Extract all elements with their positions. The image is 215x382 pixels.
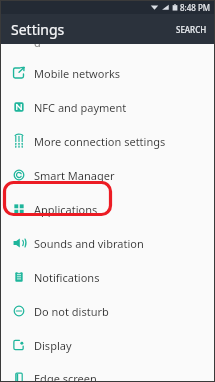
button[interactable]: Smart Manager: [0, 158, 215, 192]
staticText: Notifications: [34, 270, 100, 285]
button[interactable]: More connection settings: [0, 124, 215, 158]
staticText: Applications: [34, 202, 98, 217]
staticText: Do not disturb: [34, 304, 109, 319]
staticText: Smart Manager: [34, 168, 115, 183]
button[interactable]: Notifications: [0, 260, 215, 294]
button[interactable]: Display: [0, 328, 215, 362]
button[interactable]: Mobile networks: [0, 56, 215, 90]
button[interactable]: Applications: [0, 192, 215, 226]
staticText: SEARCH: [176, 24, 207, 35]
button[interactable]: NFC and payment: [0, 90, 215, 124]
button[interactable]: SEARCH: [168, 18, 215, 41]
staticText: Settings: [11, 20, 65, 39]
staticText: Display: [34, 338, 72, 353]
button[interactable]: Do not disturb: [0, 294, 215, 328]
button[interactable]: Sounds and vibration: [0, 226, 215, 260]
staticText: 8:48 PM: [180, 2, 211, 13]
button[interactable]: Edge screen: [0, 362, 215, 382]
button[interactable]: g: [0, 44, 215, 56]
staticText: More connection settings: [34, 134, 166, 149]
staticText: Mobile networks: [34, 66, 121, 81]
staticText: Edge screen: [34, 371, 97, 382]
staticText: Sounds and vibration: [34, 236, 144, 251]
staticText: g: [34, 44, 41, 47]
staticText: NFC and payment: [34, 100, 127, 115]
